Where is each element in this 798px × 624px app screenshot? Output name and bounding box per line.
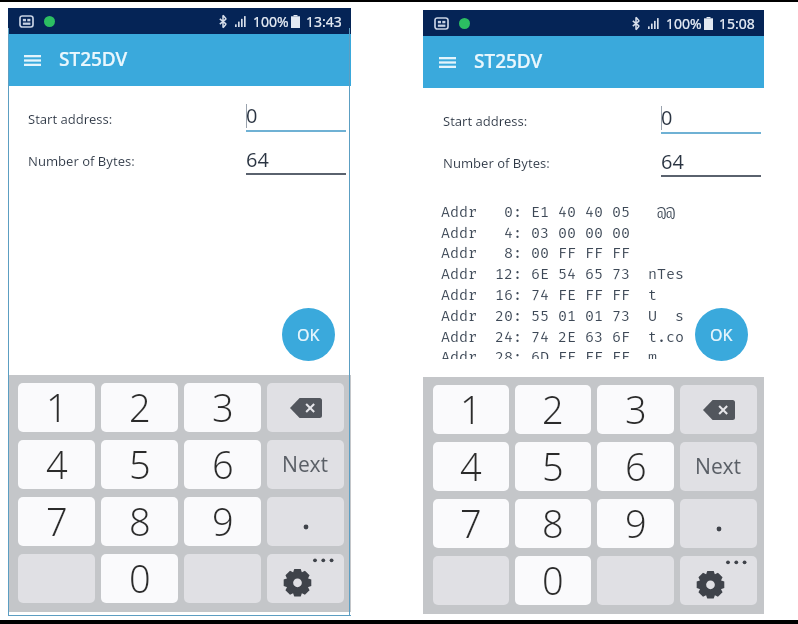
staticText: OK [297,324,320,346]
staticText: 0 [542,556,564,603]
staticText: 6 [625,442,647,489]
staticText: 64 [661,148,684,175]
staticText: 9 [625,499,647,546]
staticText: 6 [212,440,234,487]
button[interactable]: 5 [101,440,178,489]
staticText: 5 [542,442,564,489]
staticText: 9 [212,497,234,544]
staticText: 100% [253,12,289,31]
staticText: 1 [460,385,482,432]
staticText: 2 [129,383,151,430]
button[interactable]: Backspace [267,383,344,432]
button[interactable]: Keyboard settings [267,554,344,603]
button[interactable]: 3 [184,383,261,432]
staticText: 3 [625,385,647,432]
staticText: 15:08 [719,14,755,33]
button[interactable]: Keyboard settings [680,556,757,605]
staticText: Addr 20: 55 01 01 73 U s [441,307,685,325]
button[interactable]: 9 [597,499,674,548]
button[interactable]: Open navigation menu [16,44,48,76]
staticText: 1 [46,383,68,430]
staticText: Addr 4: 03 00 00 00 [441,224,631,242]
button[interactable]: 2 [101,383,178,432]
button[interactable]: 9 [184,497,261,546]
button[interactable]: 2 [515,385,591,434]
staticText: Number of Bytes: [28,152,135,170]
button[interactable]: 1 [433,385,509,434]
button[interactable]: Next [680,442,757,491]
button[interactable]: OK [695,308,748,361]
staticText: 8 [129,497,151,544]
button[interactable]: 0 [515,556,591,605]
button[interactable]: 1 [18,383,95,432]
staticText: Start address: [28,110,113,128]
staticText: ST25DV [474,48,543,74]
staticText: Next [282,450,329,479]
button[interactable]: Open navigation menu [431,46,463,78]
staticText: 0 [246,102,258,129]
staticText: 0 [661,104,673,131]
staticText: 8 [542,499,564,546]
button[interactable]: 8 [101,497,178,546]
staticText: 5 [129,440,151,487]
button[interactable]: Backspace [680,385,757,434]
staticText: 64 [246,146,269,173]
button[interactable]: 6 [597,442,674,491]
button[interactable]: 0 [101,554,178,603]
staticText: 4 [46,440,68,487]
staticText: Number of Bytes: [443,154,550,172]
staticText: Next [695,452,742,481]
button[interactable]: 3 [597,385,674,434]
staticText: 13:43 [306,12,342,31]
button[interactable]: 7 [18,497,95,546]
button[interactable]: Decimal point [267,497,344,546]
staticText: 3 [212,383,234,430]
staticText: 7 [46,497,68,544]
staticText: ST25DV [59,46,128,72]
staticText: 0 [129,554,151,601]
staticText: Start address: [443,112,528,130]
staticText: 2 [542,385,564,432]
staticText: Addr 0: E1 40 40 05 @@ [441,203,676,221]
button[interactable]: 5 [515,442,591,491]
staticText: 7 [460,499,482,546]
button[interactable]: Decimal point [680,499,757,548]
staticText: Addr 12: 6E 54 65 73 nTes [441,265,685,283]
button[interactable]: 4 [433,442,509,491]
button[interactable]: Next [267,440,344,489]
staticText: 100% [666,14,702,33]
button[interactable]: 7 [433,499,509,548]
staticText: 4 [460,442,482,489]
staticText: Addr 28: 6D FF FF FF m [441,348,658,359]
button[interactable]: OK [282,308,335,361]
staticText: Addr 24: 74 2E 63 6F t.co [441,328,685,346]
staticText: Addr 16: 74 FE FF FF t [441,286,658,304]
staticText: OK [710,324,733,346]
button[interactable]: 6 [184,440,261,489]
button[interactable]: 4 [18,440,95,489]
button[interactable]: 8 [515,499,591,548]
staticText: Addr 8: 00 FF FF FF [441,244,631,262]
